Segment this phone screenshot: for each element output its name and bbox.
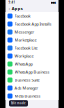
staticText: Facebook Lite bbox=[14, 45, 37, 51]
staticText: ●●▮ bbox=[50, 1, 55, 4]
button[interactable]: Ads Manager bbox=[5, 84, 58, 92]
button[interactable]: Facebook App Installs bbox=[5, 20, 58, 28]
button[interactable]: Facebook bbox=[5, 12, 58, 20]
staticText: ‹ bbox=[8, 5, 10, 12]
staticText: WhatsApp Business bbox=[14, 69, 49, 75]
button[interactable]: Marketplace bbox=[5, 36, 58, 44]
button[interactable]: Facebook Lite bbox=[5, 44, 58, 52]
button[interactable]: Back bbox=[8, 5, 10, 12]
staticText: Business Suite bbox=[14, 77, 39, 83]
staticText: Facebook bbox=[14, 13, 30, 19]
staticText: Edit mode bbox=[11, 102, 26, 105]
staticText: Meta Business bbox=[14, 93, 40, 99]
staticText: Apps bbox=[12, 6, 23, 11]
button[interactable]: WhatsApp bbox=[5, 60, 58, 68]
staticText: 9:41 bbox=[8, 1, 15, 4]
button[interactable]: Business Suite bbox=[5, 76, 58, 84]
staticText: WhatsApp bbox=[14, 61, 32, 67]
button[interactable]: Edit mode bbox=[9, 100, 28, 106]
button[interactable]: Meta Business bbox=[5, 92, 58, 100]
button[interactable]: Messenger bbox=[5, 28, 58, 36]
staticText: Workplace bbox=[14, 53, 33, 59]
staticText: Facebook App Installs bbox=[14, 21, 51, 27]
staticText: Messenger bbox=[14, 29, 34, 35]
button[interactable]: Workplace bbox=[5, 52, 58, 60]
button[interactable]: WhatsApp Business bbox=[5, 68, 58, 76]
staticText: Marketplace bbox=[14, 37, 36, 43]
staticText: Ads Manager bbox=[14, 85, 38, 91]
